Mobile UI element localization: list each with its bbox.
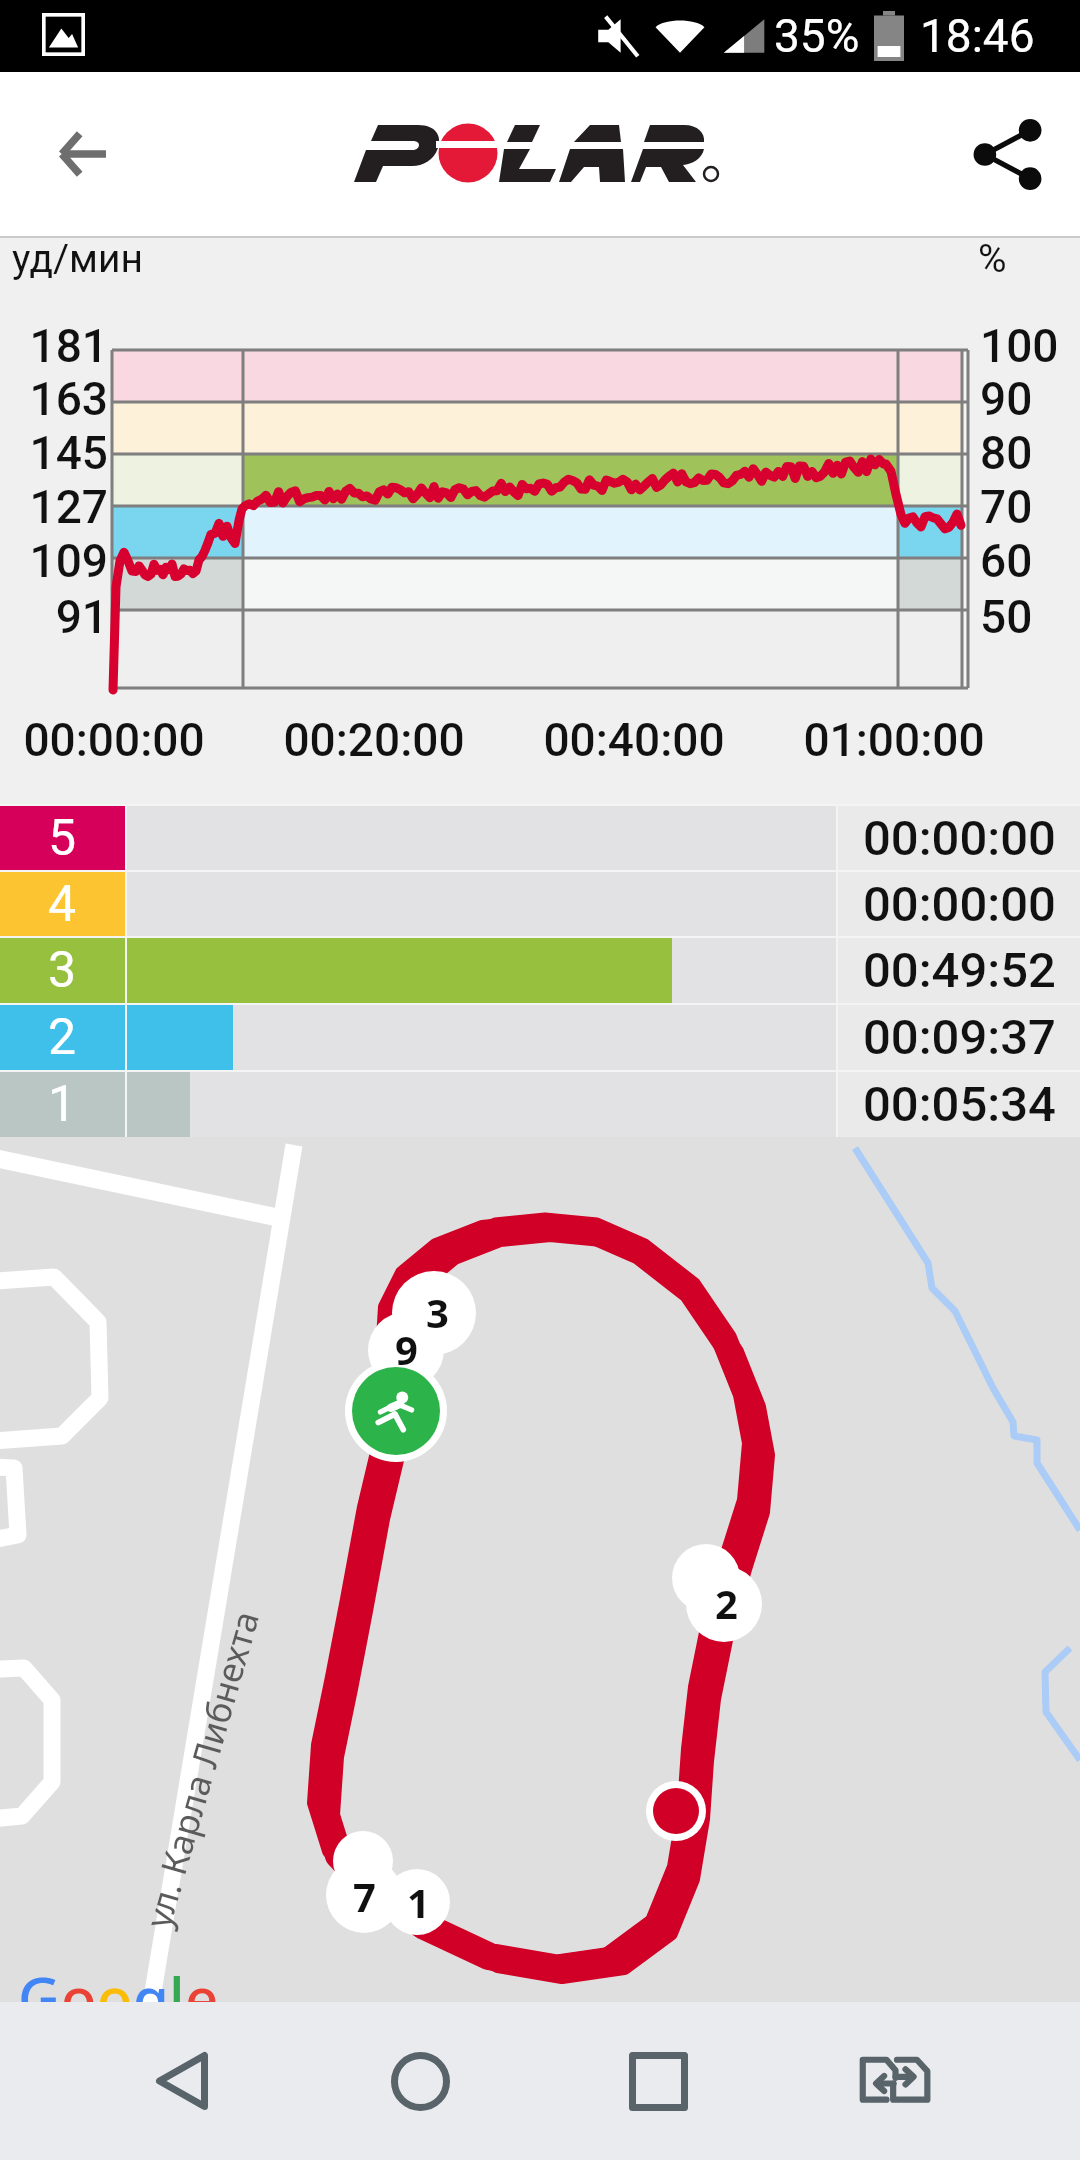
- staticText: l: [169, 1958, 185, 2037]
- staticText: G: [18, 1958, 61, 2037]
- staticText: 18:46: [920, 9, 1035, 63]
- staticText: 00:40:00: [484, 713, 784, 767]
- staticText: 00:49:52: [863, 942, 1056, 999]
- staticText: 7: [353, 1869, 376, 1923]
- button[interactable]: 1: [0, 1070, 1080, 1137]
- staticText: 109: [0, 534, 108, 588]
- staticText: 3: [426, 1285, 449, 1339]
- staticText: 00:05:34: [863, 1076, 1056, 1133]
- staticText: 00:00:00: [863, 876, 1056, 933]
- button[interactable]: Switch app: [821, 2006, 971, 2156]
- staticText: ул. Карла Либнехта: [134, 1605, 270, 1933]
- staticText: 00:00:00: [863, 810, 1056, 867]
- staticText: 2: [48, 1008, 77, 1067]
- staticText: e: [185, 1958, 219, 2037]
- staticText: 80: [980, 426, 1080, 480]
- staticText: 163: [0, 372, 108, 426]
- button[interactable]: 2: [0, 1003, 1080, 1070]
- staticText: 127: [0, 480, 108, 534]
- staticText: 00:20:00: [224, 713, 524, 767]
- staticText: 5: [48, 809, 77, 868]
- button[interactable]: Home: [345, 2006, 495, 2156]
- button[interactable]: Recents: [583, 2006, 733, 2156]
- button[interactable]: 3: [0, 936, 1080, 1003]
- staticText: %: [978, 236, 1007, 282]
- staticText: 01:00:00: [744, 713, 1044, 767]
- staticText: o: [61, 1958, 97, 2037]
- button[interactable]: 4: [0, 870, 1080, 936]
- staticText: o: [97, 1958, 133, 2037]
- staticText: 3: [48, 941, 77, 1000]
- staticText: 1: [48, 1075, 77, 1134]
- staticText: 90: [980, 372, 1080, 426]
- staticText: 2: [715, 1576, 738, 1630]
- staticText: 4: [48, 875, 77, 934]
- staticText: 70: [980, 480, 1080, 534]
- staticText: g: [133, 1958, 169, 2037]
- staticText: уд/мин: [12, 236, 143, 282]
- staticText: 35%: [774, 9, 860, 63]
- button[interactable]: Share: [951, 98, 1063, 210]
- staticText: 181: [0, 319, 108, 373]
- button[interactable]: Back: [26, 98, 138, 210]
- staticText: 50: [980, 590, 1080, 644]
- staticText: 9: [395, 1322, 418, 1376]
- staticText: 145: [0, 426, 108, 480]
- staticText: 100: [980, 319, 1080, 373]
- staticText: 1: [407, 1875, 430, 1929]
- button[interactable]: Back: [107, 2006, 257, 2156]
- staticText: 00:09:37: [863, 1009, 1056, 1066]
- staticText: 60: [980, 534, 1080, 588]
- button[interactable]: 5: [0, 804, 1080, 870]
- staticText: 91: [0, 590, 108, 644]
- staticText: 00:00:00: [0, 713, 264, 767]
